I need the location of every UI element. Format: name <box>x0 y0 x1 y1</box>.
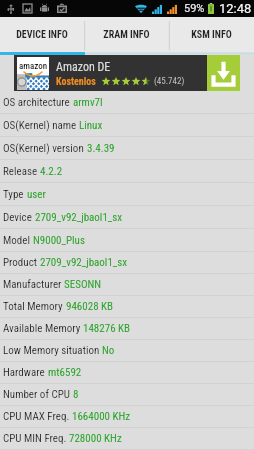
button[interactable]: Install <box>207 55 240 91</box>
staticText: armv7l <box>73 96 103 109</box>
staticText: (45.742) <box>154 76 185 87</box>
staticText: 59% <box>184 2 205 15</box>
staticText: mt6592 <box>48 366 82 379</box>
staticText: Number of CPU <box>3 388 73 401</box>
staticText: Type <box>3 188 27 201</box>
button[interactable]: Hardware <box>0 362 254 384</box>
staticText: Amazon DE <box>56 60 111 74</box>
staticText: Model <box>3 234 33 247</box>
staticText: No <box>102 344 115 357</box>
staticText: 946028 KB <box>66 300 114 313</box>
staticText: 148276 KB <box>83 322 131 335</box>
staticText: amazon <box>19 61 48 72</box>
staticText: Release <box>3 165 40 178</box>
staticText: OS architecture <box>3 96 73 109</box>
staticText: SESONN <box>64 278 102 291</box>
button[interactable]: OS architecture <box>0 91 254 114</box>
staticText: Linux <box>79 119 103 132</box>
button[interactable]: Number of CPU <box>0 384 254 406</box>
staticText: 728000 KHz <box>69 432 122 445</box>
button[interactable]: Product <box>0 252 254 274</box>
staticText: Product <box>3 256 40 269</box>
staticText: Available Memory <box>3 322 83 335</box>
button[interactable]: CPU MAX Freq. <box>0 406 254 428</box>
button[interactable]: Low Memory situation <box>0 340 254 362</box>
button[interactable]: Type <box>0 183 254 206</box>
staticText: Kostenlos <box>56 76 96 88</box>
staticText: 1664000 KHz <box>72 410 131 423</box>
staticText: OS(Kernel) name <box>3 119 79 132</box>
button[interactable]: Device <box>0 206 254 229</box>
staticText: DEVICE INFO <box>16 29 68 41</box>
button[interactable]: amazon <box>14 55 240 91</box>
button[interactable]: Total Memory <box>0 296 254 318</box>
button[interactable]: CPU MIN Freq. <box>0 428 254 450</box>
button[interactable]: OS(Kernel) version <box>0 137 254 160</box>
staticText: Total Memory <box>3 300 66 313</box>
button[interactable]: OS(Kernel) name <box>0 114 254 137</box>
button[interactable]: KSM INFO <box>169 17 254 52</box>
staticText: Low Memory situation <box>3 344 102 357</box>
staticText: ZRAM INFO <box>103 29 150 41</box>
staticText: user <box>27 188 46 201</box>
staticText: CPU MAX Freq. <box>3 410 72 423</box>
staticText: 8 <box>73 388 79 401</box>
staticText: 4.2.2 <box>40 165 63 178</box>
staticText: Hardware <box>3 366 48 379</box>
staticText: Manufacturer <box>3 278 64 291</box>
staticText: N9000_Plus <box>33 234 85 247</box>
staticText: 12:48 <box>219 1 252 16</box>
button[interactable]: Manufacturer <box>0 274 254 296</box>
button[interactable]: ZRAM INFO <box>84 17 169 52</box>
staticText: KSM INFO <box>191 29 232 41</box>
button[interactable]: Available Memory <box>0 318 254 340</box>
staticText: 3.4.39 <box>87 142 115 155</box>
staticText: Device <box>3 211 35 224</box>
staticText: CPU MIN Freq. <box>3 432 69 445</box>
staticText: 2709_v92_jbaol1_sx <box>40 256 128 269</box>
button[interactable]: Release <box>0 160 254 183</box>
button[interactable]: DEVICE INFO <box>0 17 84 52</box>
staticText: 2709_v92_jbaol1_sx <box>35 211 123 224</box>
staticText: OS(Kernel) version <box>3 142 87 155</box>
button[interactable]: Model <box>0 229 254 252</box>
